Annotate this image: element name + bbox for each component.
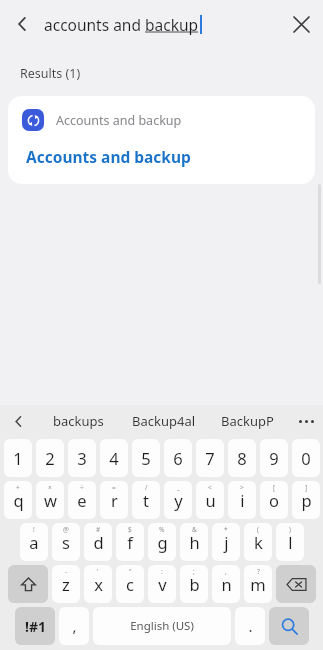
staticText: o — [269, 489, 279, 511]
staticText: i — [240, 489, 245, 511]
button[interactable]: e — [68, 481, 96, 519]
staticText: & — [192, 525, 197, 534]
staticText: > — [240, 483, 244, 492]
button[interactable]: 3 — [68, 439, 96, 477]
staticText: English (US) — [130, 618, 194, 634]
staticText: n — [221, 573, 232, 595]
button[interactable]: BackupP — [208, 405, 286, 437]
button[interactable]: 1 — [4, 439, 32, 477]
staticText: a — [29, 531, 39, 553]
staticText: c — [126, 573, 134, 595]
button[interactable]: English (US) — [93, 607, 231, 645]
button[interactable]: b — [180, 565, 208, 603]
staticText: 1 — [13, 447, 23, 469]
staticText: . — [248, 616, 253, 636]
button[interactable]: More options — [289, 405, 323, 437]
staticText: d — [93, 531, 104, 553]
staticText: * — [224, 525, 228, 534]
staticText: z — [62, 573, 70, 595]
button[interactable]: 8 — [228, 439, 256, 477]
button[interactable]: Back — [0, 2, 44, 46]
staticText: v — [158, 573, 167, 595]
button[interactable]: p — [292, 481, 320, 519]
button[interactable]: z — [52, 565, 80, 603]
button[interactable]: r — [100, 481, 128, 519]
staticText: m — [250, 573, 266, 595]
staticText: f — [127, 531, 133, 553]
staticText: 9 — [269, 447, 279, 469]
staticText: < — [208, 483, 212, 492]
staticText: k — [254, 531, 263, 553]
staticText: $ — [128, 525, 132, 534]
button[interactable]: 4 — [100, 439, 128, 477]
staticText: ! — [33, 525, 35, 534]
staticText: ( — [257, 525, 259, 534]
button[interactable]: i — [228, 481, 256, 519]
button[interactable]: g — [148, 523, 176, 561]
button[interactable]: y — [164, 481, 192, 519]
button[interactable]: q — [4, 481, 32, 519]
staticText: s — [62, 531, 70, 553]
button[interactable]: 5 — [132, 439, 160, 477]
staticText: r — [111, 489, 118, 511]
button[interactable]: k — [244, 523, 272, 561]
button[interactable]: 9 — [260, 439, 288, 477]
button[interactable]: !#1 — [15, 607, 55, 645]
button[interactable]: u — [196, 481, 224, 519]
staticText: ? — [257, 567, 260, 576]
button[interactable]: c — [116, 565, 144, 603]
staticText: BackupP — [221, 412, 274, 430]
staticText: , — [225, 567, 227, 576]
button[interactable]: l — [276, 523, 304, 561]
staticText: h — [189, 531, 200, 553]
button[interactable]: j — [212, 523, 240, 561]
button[interactable]: v — [148, 565, 176, 603]
staticText: backups — [53, 412, 104, 430]
button[interactable]: Accounts and backup — [8, 96, 315, 184]
button[interactable]: 2 — [36, 439, 64, 477]
staticText: 0 — [301, 447, 311, 469]
staticText: Accounts and backup — [56, 112, 182, 129]
staticText: 7 — [205, 447, 215, 469]
staticText: accounts and — [44, 14, 145, 35]
staticText: j — [224, 531, 229, 553]
staticText: 5 — [141, 447, 151, 469]
button[interactable]: 0 — [292, 439, 320, 477]
staticText: = — [112, 483, 116, 492]
button[interactable] — [276, 565, 316, 603]
staticText: e — [77, 489, 87, 511]
button[interactable]: d — [84, 523, 112, 561]
staticText: _ — [177, 483, 180, 492]
button[interactable]: 6 — [164, 439, 192, 477]
button[interactable]: o — [260, 481, 288, 519]
staticText: 2 — [45, 447, 55, 469]
button[interactable]: 7 — [196, 439, 224, 477]
staticText: Backup4al — [132, 412, 196, 430]
button[interactable]: x — [84, 565, 112, 603]
staticText: p — [301, 489, 312, 511]
button[interactable]: f — [116, 523, 144, 561]
button[interactable]: w — [36, 481, 64, 519]
staticText: x — [94, 573, 103, 595]
staticText: " — [129, 567, 132, 576]
staticText: t — [143, 489, 149, 511]
button[interactable]: backups — [36, 405, 120, 437]
button[interactable]: h — [180, 523, 208, 561]
button[interactable]: m — [244, 565, 272, 603]
button[interactable] — [269, 607, 309, 645]
staticText: : — [161, 567, 163, 576]
staticText: !#1 — [25, 617, 46, 636]
staticText: ' — [97, 567, 99, 576]
button[interactable]: , — [59, 607, 89, 645]
button[interactable]: . — [235, 607, 265, 645]
button[interactable] — [8, 565, 48, 603]
button[interactable]: a — [20, 523, 48, 561]
button[interactable]: Clear search — [279, 2, 323, 46]
staticText: / — [145, 483, 148, 492]
button[interactable]: t — [132, 481, 160, 519]
button[interactable]: Previous suggestions — [0, 405, 36, 437]
staticText: ) — [289, 525, 291, 534]
button[interactable]: n — [212, 565, 240, 603]
button[interactable]: Backup4al — [120, 405, 208, 437]
button[interactable]: s — [52, 523, 80, 561]
